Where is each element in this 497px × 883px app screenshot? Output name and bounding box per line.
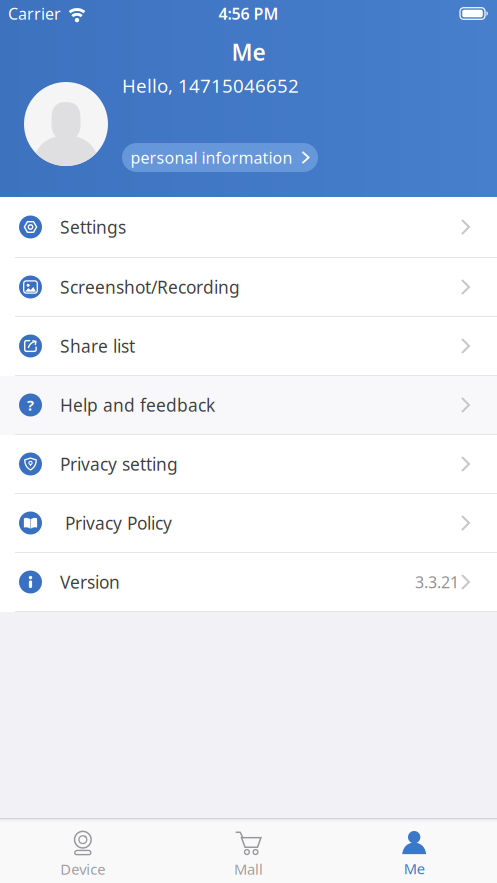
button[interactable]: Mall	[166, 830, 331, 879]
staticText: Help and feedback	[60, 393, 215, 416]
button[interactable]: ?	[0, 376, 497, 435]
staticText: personal information	[130, 147, 292, 168]
staticText: Privacy setting	[60, 452, 178, 475]
staticText: 4:56 PM	[218, 3, 278, 24]
button[interactable]: Version	[0, 553, 497, 612]
button[interactable]: personal information	[122, 143, 318, 172]
staticText: Hello, 14715046652	[122, 73, 299, 98]
staticText: Carrier	[8, 3, 61, 24]
button[interactable]: Me	[331, 831, 497, 878]
button[interactable]: Share list	[0, 317, 497, 376]
staticText: ?	[27, 395, 34, 415]
button[interactable]: Settings	[0, 197, 497, 258]
button[interactable]: Device	[0, 830, 166, 879]
button[interactable]: Screenshot/Recording	[0, 258, 497, 317]
staticText: 3.3.21	[415, 571, 459, 593]
staticText: Screenshot/Recording	[60, 275, 240, 298]
staticText: Me	[404, 859, 425, 878]
button[interactable]: Privacy Policy	[0, 494, 497, 553]
staticText: Privacy Policy	[60, 511, 172, 534]
staticText: Version	[60, 570, 120, 593]
button[interactable]: Privacy setting	[0, 435, 497, 494]
staticText: Me	[231, 37, 265, 67]
staticText: Mall	[234, 859, 263, 879]
staticText: Settings	[60, 215, 126, 238]
staticText: Device	[60, 859, 105, 879]
staticText: Share list	[60, 334, 135, 357]
